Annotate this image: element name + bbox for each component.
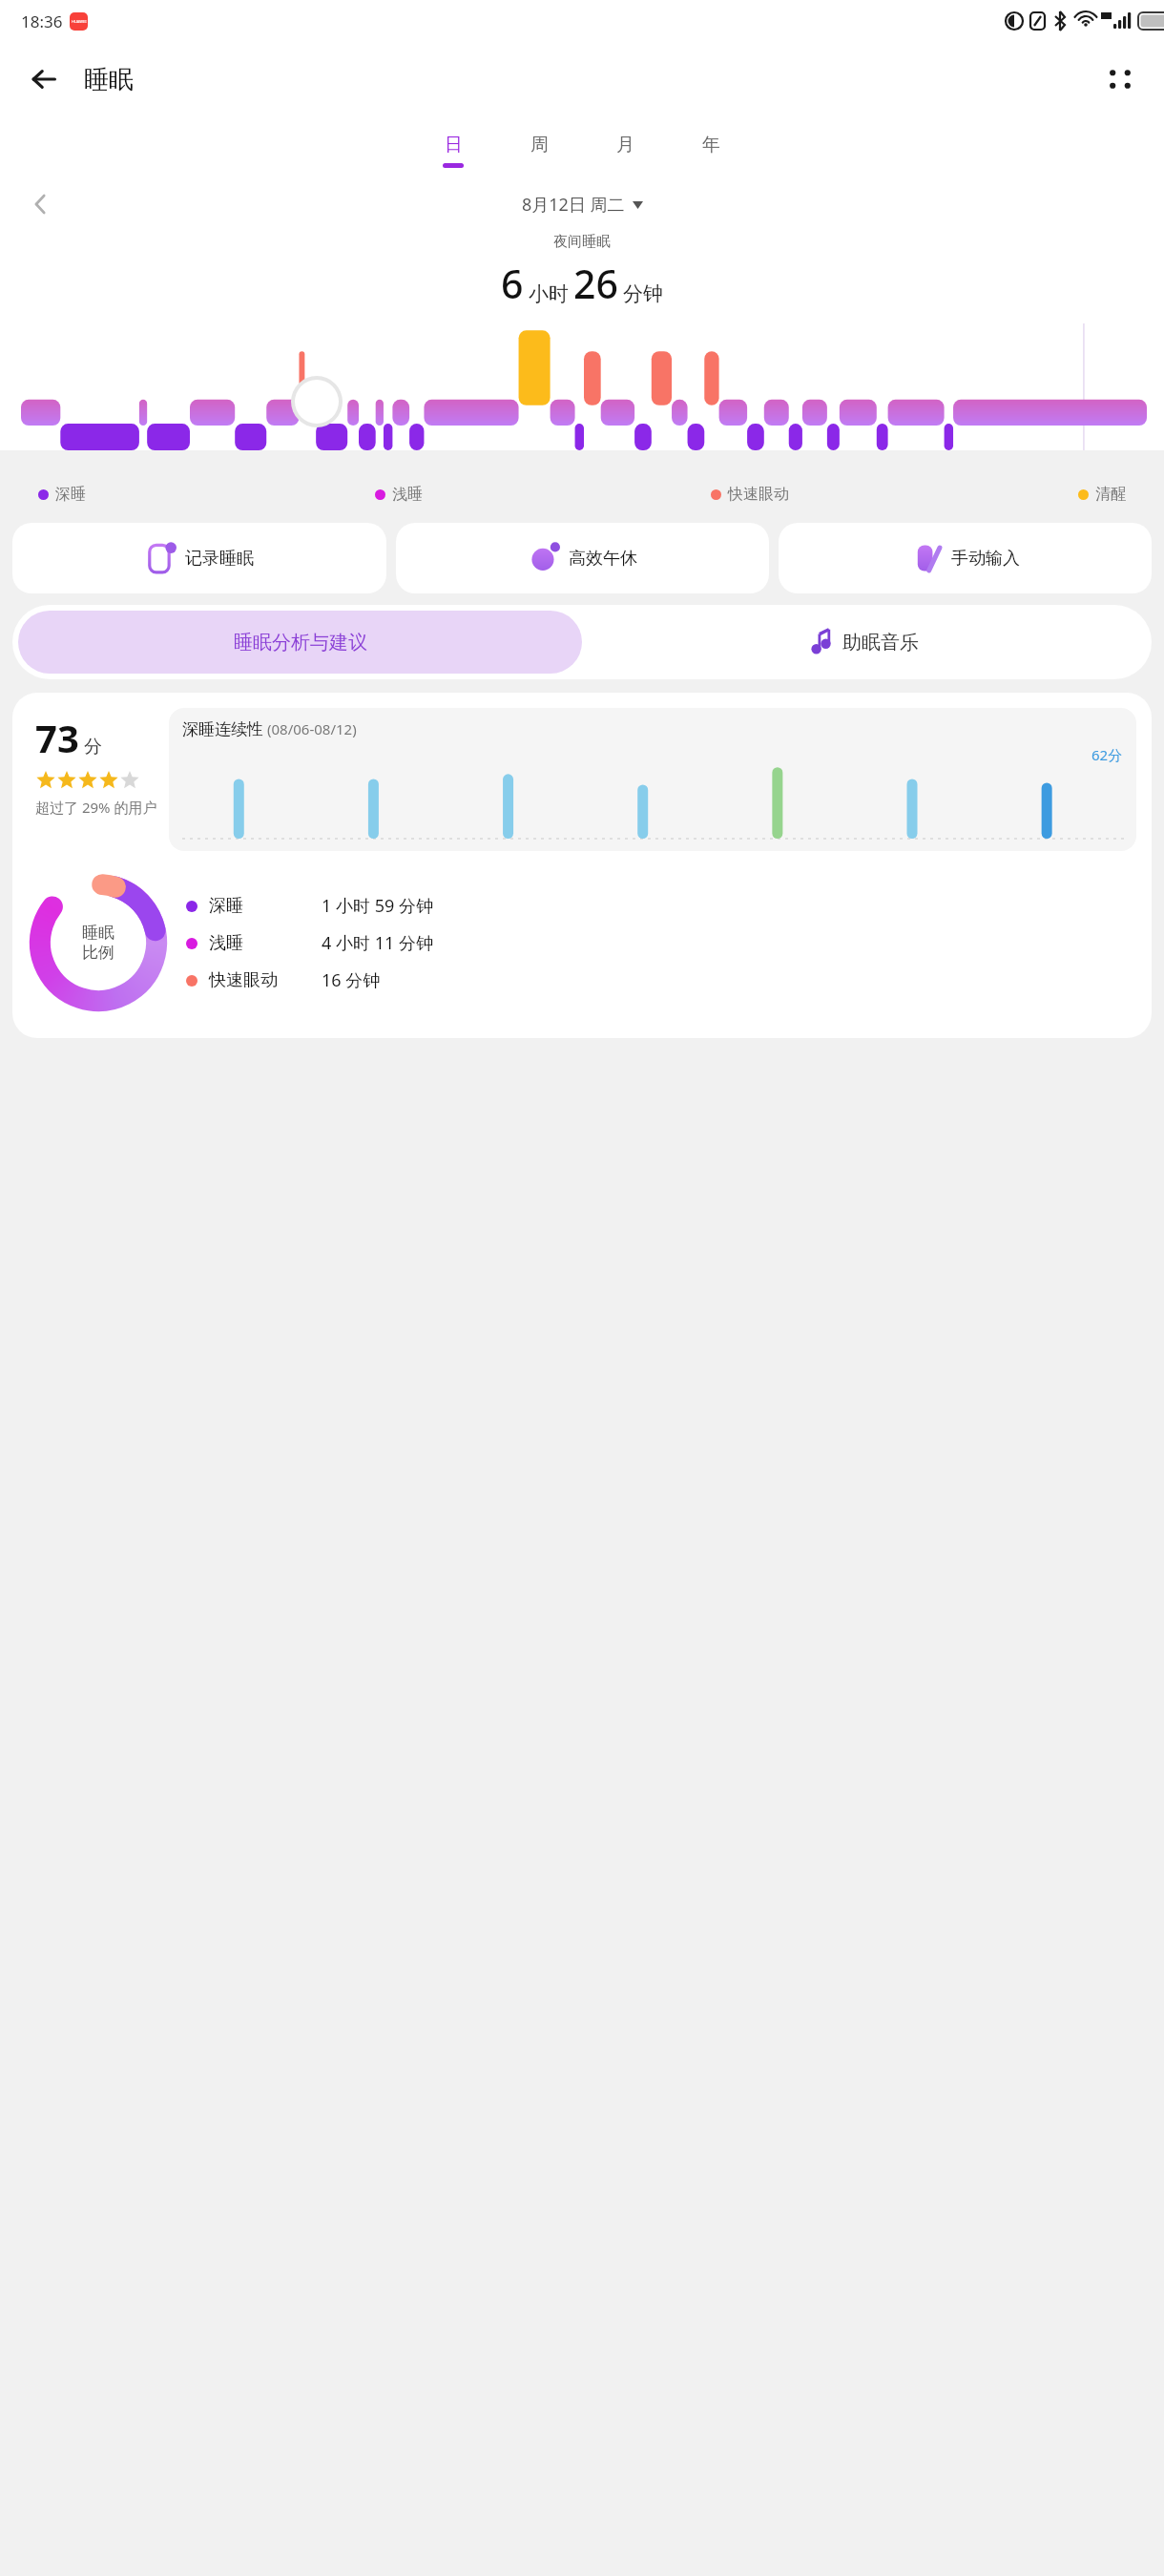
button[interactable]: 8月12日 周二 (522, 193, 643, 217)
staticText: 助眠音乐 (842, 631, 919, 654)
staticText: 比例 (82, 943, 114, 963)
button[interactable]: 睡眠分析与建议 (18, 611, 582, 674)
staticText: 73 (35, 712, 79, 763)
staticText: 月 (616, 134, 634, 156)
button[interactable]: 记录睡眠 (12, 523, 386, 593)
staticText: 快速眼动 (209, 969, 278, 991)
button[interactable]: More options (1097, 56, 1143, 102)
staticText: 睡眠 (82, 923, 114, 943)
staticText: HUAWEI (72, 19, 87, 24)
staticText: 6 (501, 257, 524, 310)
button[interactable]: 周 (496, 134, 582, 168)
button[interactable]: 手动输入 (779, 523, 1152, 593)
staticText: 睡眠 (84, 64, 134, 95)
staticText: 62分 (1091, 745, 1123, 764)
staticText: 小时 (529, 281, 569, 306)
button[interactable]: 助眠音乐 (582, 611, 1146, 674)
staticText: 日 (445, 134, 463, 156)
staticText: 浅睡 (392, 485, 423, 504)
button[interactable]: 月 (582, 134, 668, 168)
staticText: 快速眼动 (728, 485, 789, 504)
staticText: 26 (573, 257, 618, 310)
staticText: 睡眠分析与建议 (234, 631, 367, 654)
staticText: 年 (702, 134, 720, 156)
button[interactable]: 高效午休 (396, 523, 769, 593)
staticText: 4 小时 11 分钟 (322, 931, 433, 955)
staticText: 高效午休 (569, 548, 637, 570)
button[interactable]: 日 (410, 134, 496, 168)
button[interactable]: Back (21, 56, 67, 102)
button[interactable]: Previous day (19, 185, 63, 223)
staticText: 1 小时 59 分钟 (322, 894, 433, 918)
staticText: 超过了 29% 的用户 (35, 798, 157, 817)
staticText: 夜间睡眠 (0, 233, 1164, 251)
staticText: 清醒 (1095, 485, 1126, 504)
staticText: 周 (530, 134, 549, 156)
staticText: 8月12日 周二 (522, 193, 625, 217)
staticText: 分钟 (623, 281, 663, 306)
button[interactable]: 年 (668, 134, 754, 168)
staticText: 16 分钟 (322, 968, 381, 992)
staticText: 深睡连续性 (182, 719, 263, 739)
staticText: 记录睡眠 (185, 548, 254, 570)
staticText: 分 (84, 736, 102, 758)
staticText: 手动输入 (951, 548, 1020, 570)
staticText: 深睡 (209, 895, 243, 917)
staticText: 深睡 (55, 485, 86, 504)
staticText: 18:36 (21, 10, 63, 32)
staticText: (08/06-08/12) (267, 719, 357, 738)
staticText: 浅睡 (209, 932, 243, 954)
